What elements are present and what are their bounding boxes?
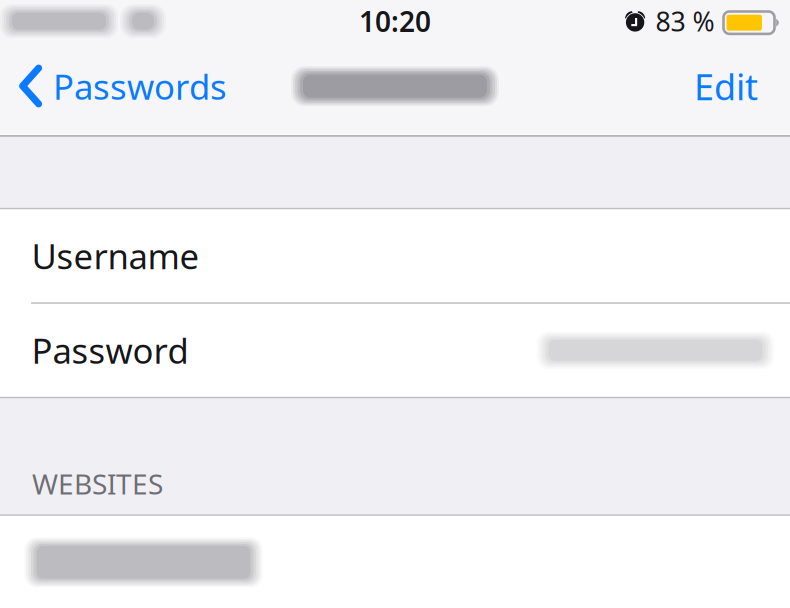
staticText: 83 % bbox=[655, 3, 714, 39]
button[interactable]: Username bbox=[0, 209, 790, 302]
button[interactable]: Edit bbox=[670, 42, 790, 130]
button[interactable]: Password bbox=[0, 304, 790, 397]
staticText: Edit bbox=[694, 62, 758, 110]
staticText: Passwords bbox=[53, 63, 227, 109]
button[interactable]: Passwords bbox=[0, 42, 241, 130]
button[interactable]: Open website bbox=[0, 516, 790, 608]
staticText: Username bbox=[31, 233, 199, 279]
staticText: Password bbox=[31, 327, 188, 373]
staticText: 10:20 bbox=[359, 3, 431, 40]
staticText: WEBSITES bbox=[32, 465, 163, 502]
